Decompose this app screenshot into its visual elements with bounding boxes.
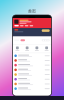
staticText: 首页 — [28, 9, 36, 14]
